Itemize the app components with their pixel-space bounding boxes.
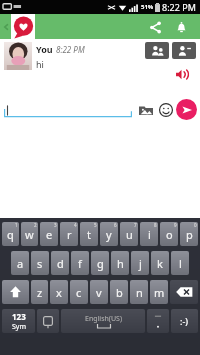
button[interactable]: r (60, 222, 78, 246)
button[interactable]: Emoji (156, 100, 175, 119)
staticText: f (78, 256, 82, 271)
button[interactable]: :-) (171, 309, 198, 333)
staticText: You (36, 43, 53, 55)
staticText: 3 (54, 222, 57, 228)
button[interactable]: k (151, 251, 169, 275)
button[interactable]: Shift (2, 280, 29, 304)
button[interactable]: App logo (11, 14, 35, 39)
staticText: 1 (15, 222, 18, 228)
staticText: p (186, 227, 193, 242)
button[interactable]: c (70, 280, 88, 304)
staticText: 123 (12, 311, 26, 322)
button[interactable]: Add people (145, 42, 169, 59)
staticText: z (37, 285, 43, 300)
staticText: Sym (12, 322, 26, 332)
staticText: :-) (180, 315, 189, 327)
staticText: q (7, 227, 14, 242)
staticText: a (17, 256, 24, 271)
button[interactable]: o (160, 222, 178, 246)
button[interactable]: Backspace (170, 280, 198, 304)
button[interactable]: Back (0, 14, 12, 39)
button[interactable]: j (131, 251, 149, 275)
button[interactable]: d (51, 251, 69, 275)
staticText: i (148, 227, 151, 242)
button[interactable] (4, 100, 132, 118)
button[interactable]: s (31, 251, 49, 275)
button[interactable]: n (130, 280, 148, 304)
staticText: d (57, 256, 64, 271)
staticText: r (67, 227, 72, 242)
button[interactable]: Notifications (170, 16, 192, 38)
staticText: y (106, 227, 112, 242)
button[interactable]: v (90, 280, 108, 304)
staticText: u (126, 227, 133, 242)
staticText: j (139, 256, 142, 271)
staticText: 51% (141, 3, 154, 11)
staticText: x (56, 285, 62, 300)
staticText: 8:22 PM (56, 44, 85, 55)
staticText: h (117, 256, 124, 271)
button[interactable]: x (50, 280, 68, 304)
button[interactable]: e (40, 222, 58, 246)
button[interactable]: 123 (2, 309, 35, 333)
staticText: 8 (154, 222, 157, 228)
button[interactable]: p (180, 222, 198, 246)
button[interactable]: h (111, 251, 129, 275)
button[interactable]: Share (144, 16, 166, 38)
staticText: 4 (74, 222, 77, 228)
staticText: t (87, 227, 91, 242)
button[interactable]: Period (147, 309, 169, 333)
staticText: 0 (194, 222, 197, 228)
button[interactable]: Space (61, 309, 145, 333)
staticText: n (136, 285, 143, 300)
staticText: 8:22 PM (162, 1, 196, 13)
button[interactable]: Attach image (136, 100, 155, 119)
staticText: b (116, 285, 123, 300)
staticText: c (76, 285, 82, 300)
button[interactable]: g (91, 251, 109, 275)
staticText: v (96, 285, 102, 300)
button[interactable]: l (171, 251, 189, 275)
staticText: English(US) (85, 314, 122, 324)
button[interactable]: Voice input (37, 309, 59, 333)
button[interactable]: b (110, 280, 128, 304)
button[interactable]: z (31, 280, 48, 304)
staticText: 6 (114, 222, 117, 228)
staticText: s (37, 256, 43, 271)
button[interactable]: i (140, 222, 158, 246)
staticText: g (97, 256, 104, 271)
button[interactable]: y (100, 222, 118, 246)
button[interactable]: Remove person (172, 42, 196, 59)
button[interactable]: u (120, 222, 138, 246)
staticText: 5 (94, 222, 97, 228)
button[interactable]: w (21, 222, 38, 246)
staticText: m (154, 285, 165, 300)
staticText: 2 (34, 222, 37, 228)
button[interactable]: m (150, 280, 168, 304)
button[interactable]: f (71, 251, 89, 275)
button[interactable]: a (11, 251, 29, 275)
staticText: l (179, 256, 182, 271)
staticText: hi (36, 58, 44, 70)
button[interactable]: Send (176, 99, 197, 120)
button[interactable]: Profile photo (4, 42, 32, 70)
staticText: k (157, 256, 163, 271)
staticText: 9 (174, 222, 177, 228)
button[interactable]: t (80, 222, 98, 246)
staticText: o (166, 227, 173, 242)
staticText: e (46, 227, 53, 242)
button[interactable]: q (2, 222, 19, 246)
button[interactable]: Sound (172, 65, 190, 83)
staticText: w (25, 227, 34, 242)
staticText: 7 (134, 222, 137, 228)
